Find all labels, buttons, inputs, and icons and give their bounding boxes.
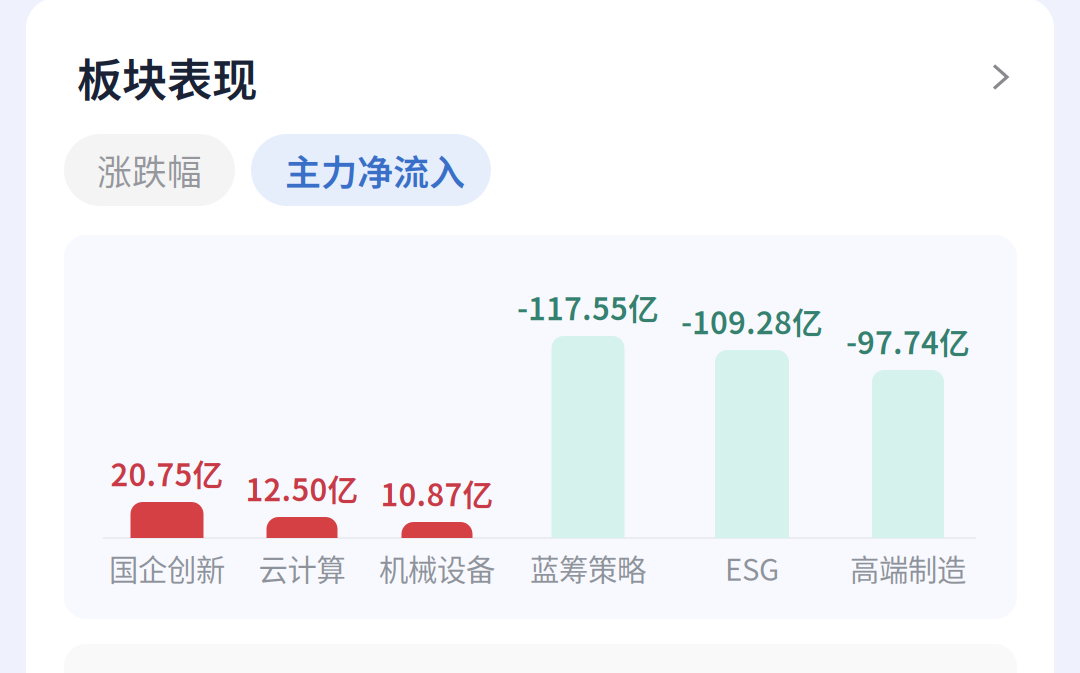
staticText: 10.87亿 (380, 471, 493, 515)
button[interactable]: 20.75亿 (92, 260, 242, 584)
staticText: 蓝筹策略 (530, 547, 646, 589)
staticText: 主力净流入 (285, 144, 465, 196)
staticText: 机械设备 (379, 547, 495, 589)
button[interactable]: -97.74亿 (833, 260, 983, 584)
staticText: -117.55亿 (517, 285, 659, 329)
staticText: 高端制造 (850, 547, 966, 589)
staticText: 国企创新 (109, 547, 225, 589)
button[interactable]: 主力净流入 (251, 134, 491, 206)
button[interactable]: -117.55亿 (513, 260, 663, 584)
staticText: 云计算 (258, 547, 345, 589)
staticText: -109.28亿 (681, 299, 823, 343)
button[interactable]: 涨跌幅 (64, 134, 235, 206)
button[interactable]: -109.28亿 (677, 260, 827, 584)
staticText: ESG (725, 547, 779, 589)
button[interactable]: 12.50亿 (227, 260, 377, 584)
staticText: 12.50亿 (245, 466, 358, 510)
staticText: 板块表现 (77, 44, 257, 110)
button[interactable]: 10.87亿 (362, 260, 512, 584)
staticText: 20.75亿 (110, 451, 223, 495)
staticText: -97.74亿 (846, 319, 970, 363)
staticText: 涨跌幅 (97, 145, 202, 195)
button[interactable]: 板块表现，查看更多 (77, 40, 1009, 114)
